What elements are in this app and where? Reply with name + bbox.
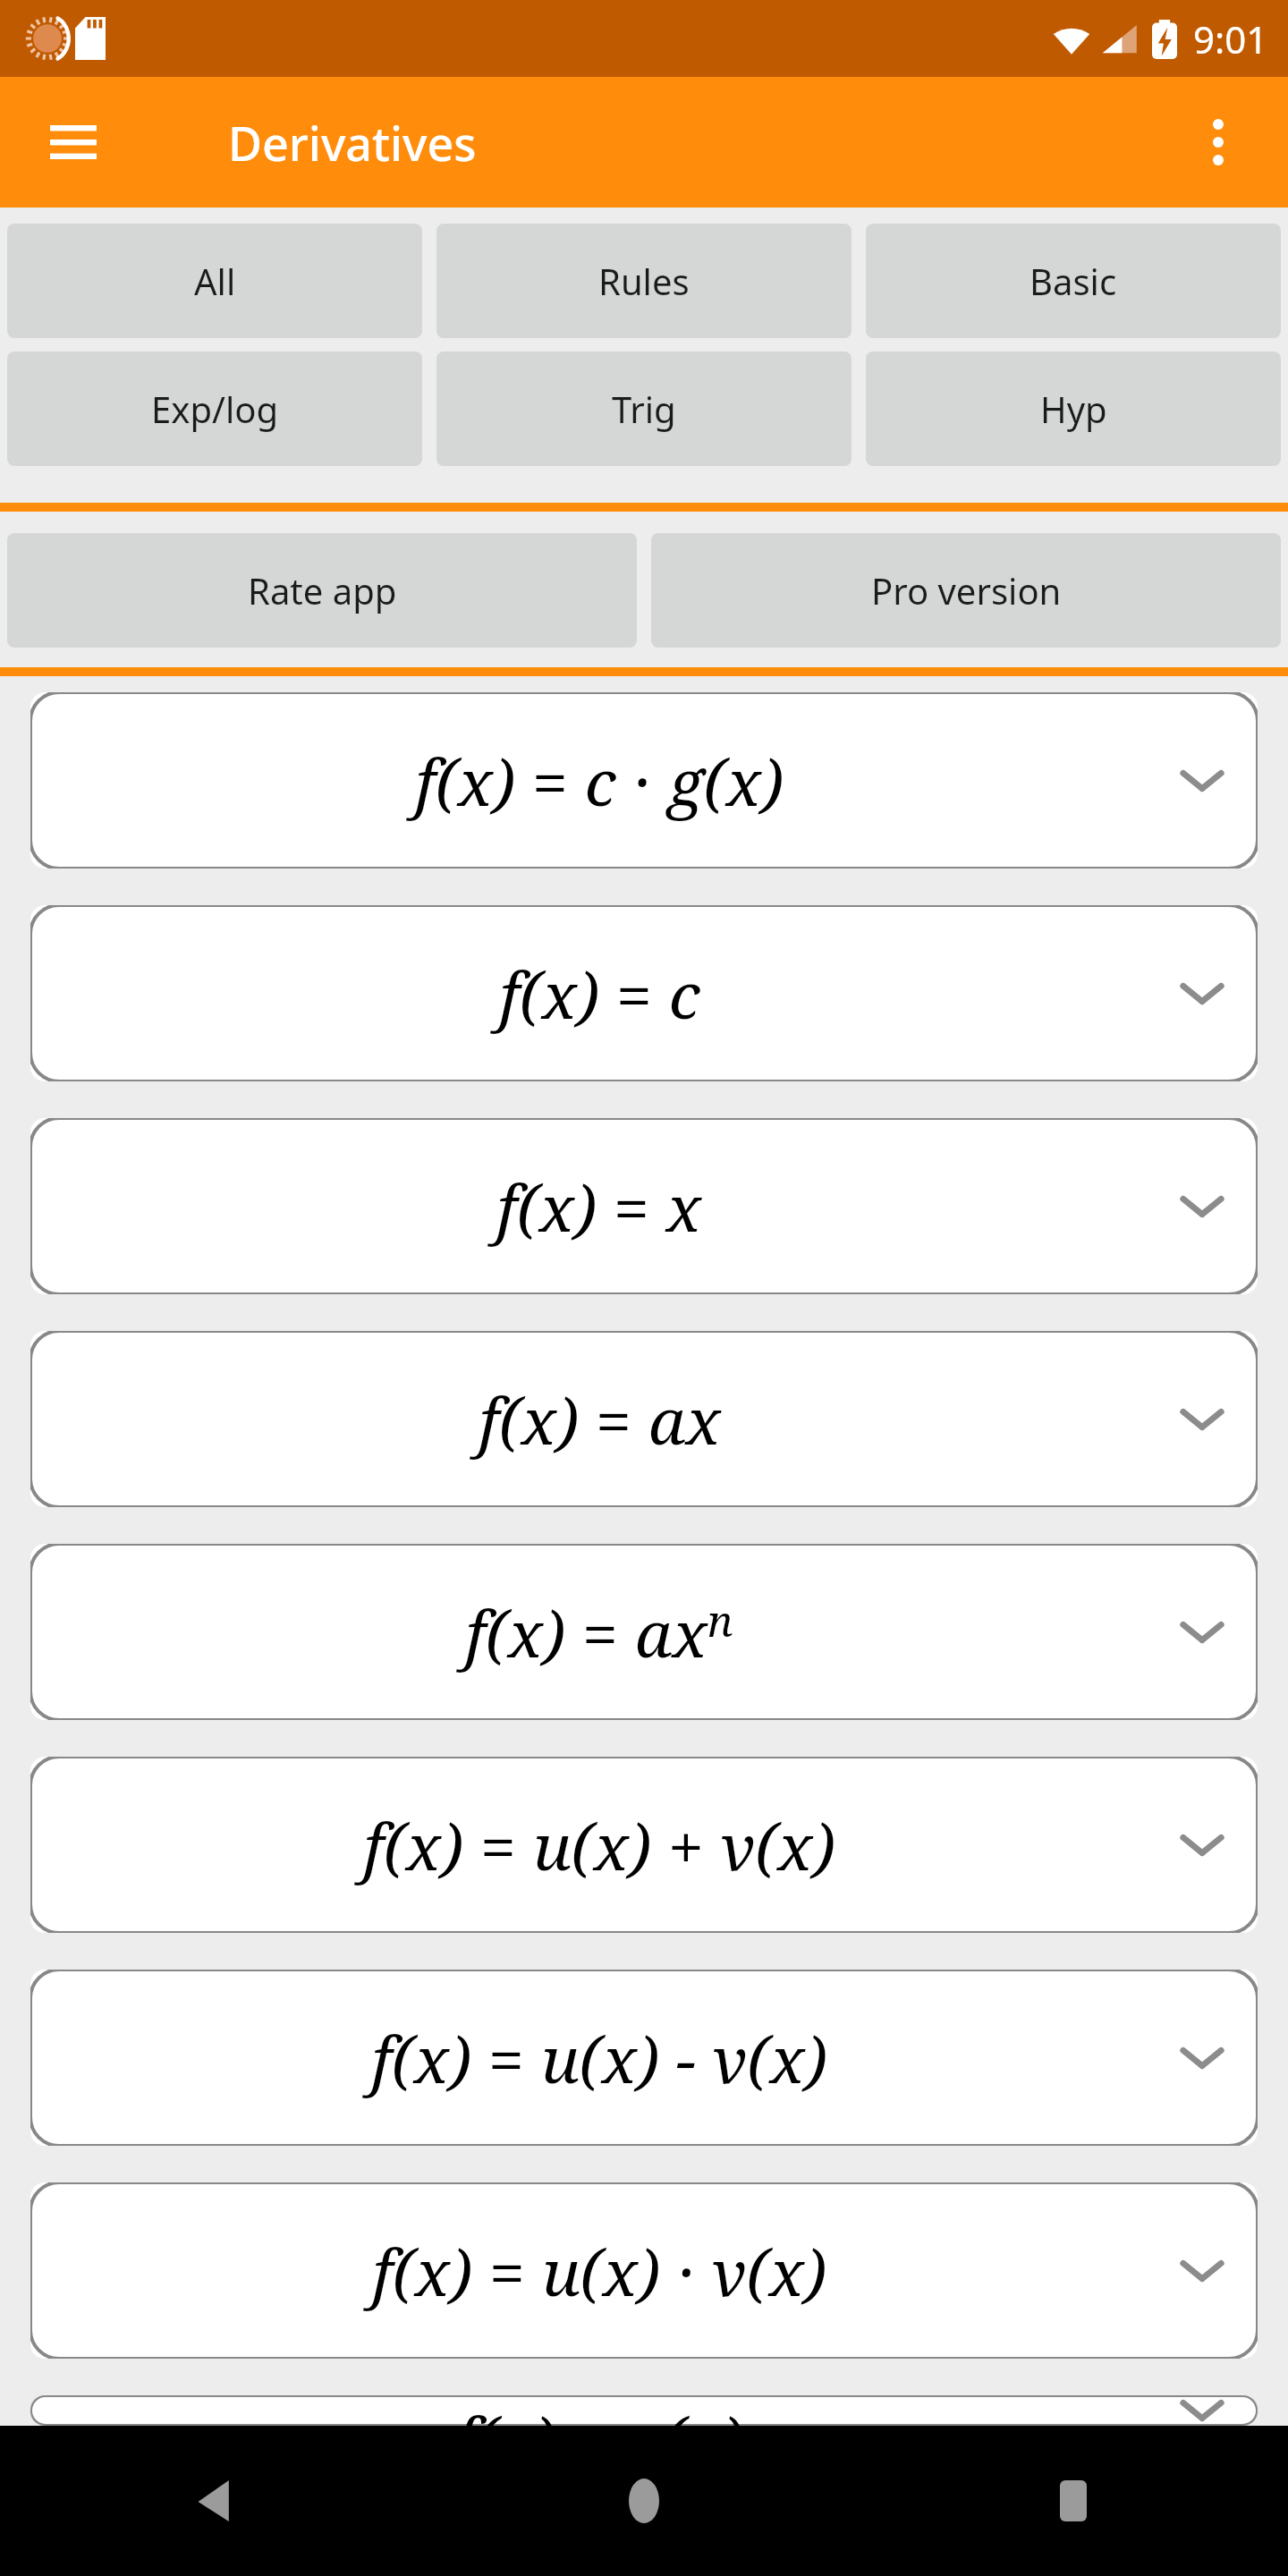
button[interactable]: Trig <box>436 352 852 466</box>
staticText: f(x) = u(x) − v(x) <box>371 2014 827 2102</box>
staticText: f(x) = x <box>496 1163 702 1250</box>
button[interactable]: f(x) = u(x) <box>30 2395 1258 2426</box>
staticText: f(x) = c · g(x) <box>415 737 784 825</box>
button[interactable]: Pro version <box>651 533 1281 648</box>
button[interactable]: Basic <box>866 224 1281 338</box>
button[interactable]: f(x) = u(x) − v(x) <box>30 1970 1258 2146</box>
button[interactable]: Home <box>429 2426 859 2576</box>
button[interactable]: Rules <box>436 224 852 338</box>
button[interactable]: f(x) = ax <box>30 1331 1258 1507</box>
staticText: Pro version <box>871 566 1062 614</box>
button[interactable]: Recent apps <box>859 2426 1288 2576</box>
staticText: All <box>194 257 236 305</box>
staticText: Basic <box>1030 257 1117 305</box>
staticText: Exp/log <box>151 385 278 433</box>
staticText: Trig <box>612 385 676 433</box>
staticText: f(x) = axn <box>465 1589 733 1676</box>
button[interactable]: More options <box>1177 101 1259 183</box>
button[interactable]: f(x) = c <box>30 905 1258 1081</box>
button[interactable]: Back <box>0 2426 429 2576</box>
button[interactable]: f(x) = axn <box>30 1544 1258 1720</box>
button[interactable]: f(x) = u(x) + v(x) <box>30 1757 1258 1933</box>
staticText: f(x) = c <box>499 950 700 1038</box>
button[interactable]: Exp/log <box>7 352 422 466</box>
staticText: f(x) = u(x) + v(x) <box>363 1801 835 1889</box>
staticText: Derivatives <box>228 111 477 174</box>
button[interactable]: Open navigation drawer <box>32 101 114 183</box>
button[interactable]: f(x) = u(x) · v(x) <box>30 2182 1258 2359</box>
staticText: Hyp <box>1040 385 1107 433</box>
staticText: 9:01 <box>1193 13 1268 64</box>
button[interactable]: Hyp <box>866 352 1281 466</box>
staticText: f(x) = u(x) · v(x) <box>372 2227 826 2315</box>
staticText: Rules <box>598 257 690 305</box>
staticText: f(x) = u(x) <box>455 2395 743 2426</box>
button[interactable]: f(x) = c · g(x) <box>30 692 1258 869</box>
button[interactable]: Rate app <box>7 533 637 648</box>
button[interactable]: All <box>7 224 422 338</box>
staticText: f(x) = ax <box>479 1376 721 1463</box>
button[interactable]: f(x) = x <box>30 1118 1258 1294</box>
staticText: Rate app <box>248 566 397 614</box>
